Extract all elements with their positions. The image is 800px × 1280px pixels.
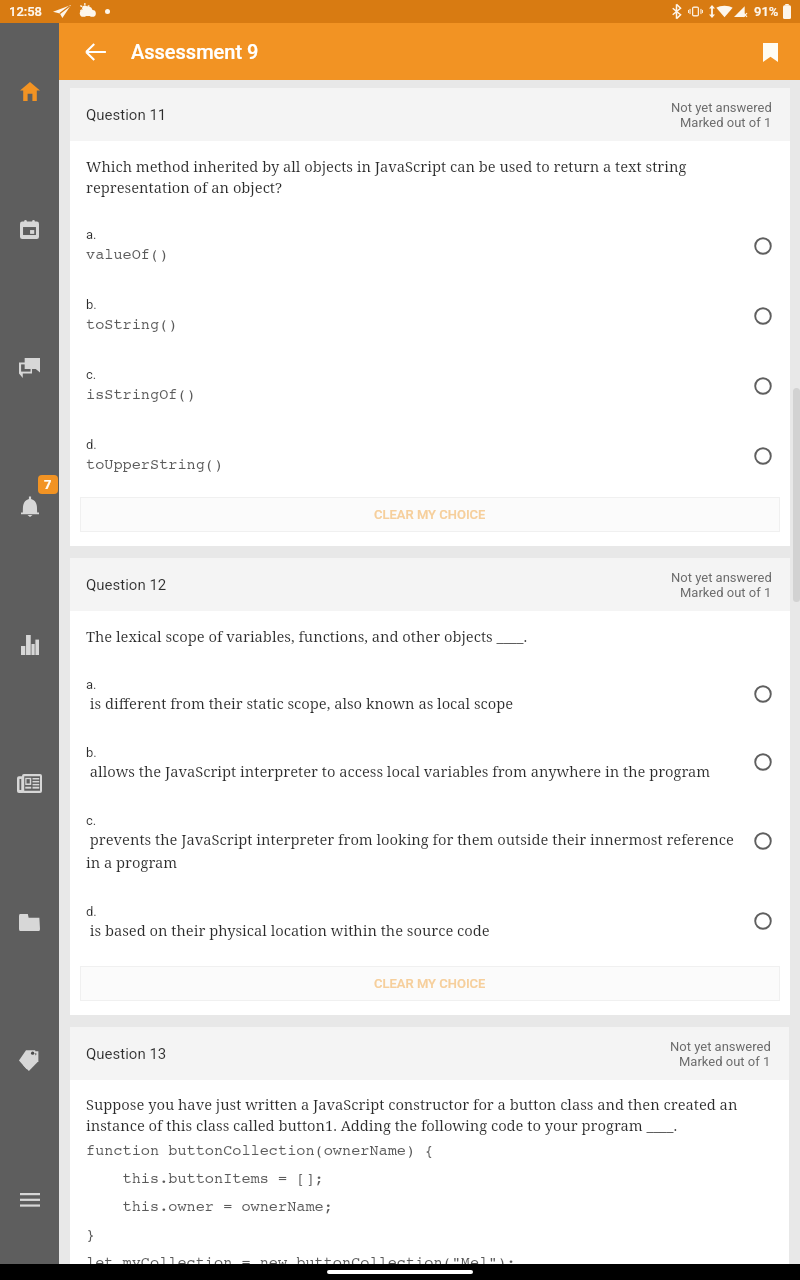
- staticText: c.: [86, 367, 97, 382]
- staticText: valueOf(): [86, 246, 169, 264]
- staticText: d.: [86, 437, 97, 452]
- staticText: Question 12: [86, 576, 167, 594]
- staticText: allows the JavaScript interpreter to acc…: [86, 761, 711, 781]
- staticText: prevents the JavaScript interpreter from…: [86, 829, 742, 872]
- staticText: CLEAR MY CHOICE: [374, 976, 486, 991]
- staticText: this.owner = ownerName;: [86, 1198, 333, 1216]
- staticText: 7: [44, 477, 52, 492]
- staticText: is based on their physical location with…: [86, 920, 490, 940]
- button[interactable]: b.: [70, 742, 790, 781]
- button[interactable]: Files: [9, 900, 50, 944]
- staticText: }: [86, 1226, 96, 1244]
- staticText: b.: [86, 745, 97, 760]
- staticText: Not yet answered: [671, 570, 772, 585]
- staticText: toString(): [86, 316, 178, 334]
- staticText: this.buttonItems = [];: [86, 1170, 324, 1188]
- staticText: function buttonCollection(ownerName) {: [86, 1142, 434, 1160]
- button[interactable]: Grades: [9, 623, 50, 667]
- button[interactable]: Notifications: [9, 484, 50, 528]
- button[interactable]: More: [9, 1177, 50, 1221]
- staticText: Question 11: [86, 106, 167, 124]
- button[interactable]: c.: [70, 810, 790, 872]
- button[interactable]: News: [9, 761, 50, 805]
- button[interactable]: Home: [9, 69, 50, 113]
- staticText: isStringOf(): [86, 386, 196, 404]
- button[interactable]: c.: [70, 364, 790, 407]
- staticText: Question 13: [86, 1045, 167, 1063]
- button[interactable]: b.: [70, 294, 790, 337]
- staticText: a.: [86, 677, 97, 692]
- staticText: The lexical scope of variables, function…: [86, 626, 528, 646]
- button[interactable]: Tags: [9, 1038, 50, 1082]
- staticText: b.: [86, 297, 97, 312]
- staticText: Suppose you have just written a JavaScri…: [86, 1094, 773, 1136]
- button[interactable]: CLEAR MY CHOICE: [80, 497, 780, 532]
- staticText: let myCollection = new buttonCollection(…: [86, 1254, 516, 1264]
- button[interactable]: Calendar: [9, 207, 50, 251]
- staticText: 91%: [754, 4, 779, 19]
- staticText: is different from their static scope, al…: [86, 693, 514, 713]
- staticText: a.: [86, 227, 97, 242]
- staticText: c.: [86, 813, 97, 828]
- staticText: Marked out of 1: [679, 1054, 771, 1069]
- staticText: Assessment 9: [131, 40, 259, 63]
- staticText: Marked out of 1: [680, 585, 772, 600]
- staticText: Not yet answered: [670, 1039, 771, 1054]
- button[interactable]: CLEAR MY CHOICE: [80, 966, 780, 1001]
- staticText: CLEAR MY CHOICE: [374, 507, 486, 522]
- staticText: toUpperString(): [86, 456, 224, 474]
- button[interactable]: a.: [70, 224, 790, 267]
- button[interactable]: Back: [81, 37, 111, 67]
- staticText: Not yet answered: [671, 100, 772, 115]
- button[interactable]: d.: [70, 901, 790, 940]
- staticText: Which method inherited by all objects in…: [86, 156, 774, 198]
- staticText: 12:58: [9, 4, 42, 19]
- staticText: Marked out of 1: [680, 115, 772, 130]
- button[interactable]: a.: [70, 674, 790, 713]
- button[interactable]: Messages: [9, 346, 50, 390]
- button[interactable]: d.: [70, 434, 790, 477]
- staticText: d.: [86, 904, 97, 919]
- button[interactable]: Bookmark: [752, 34, 788, 70]
